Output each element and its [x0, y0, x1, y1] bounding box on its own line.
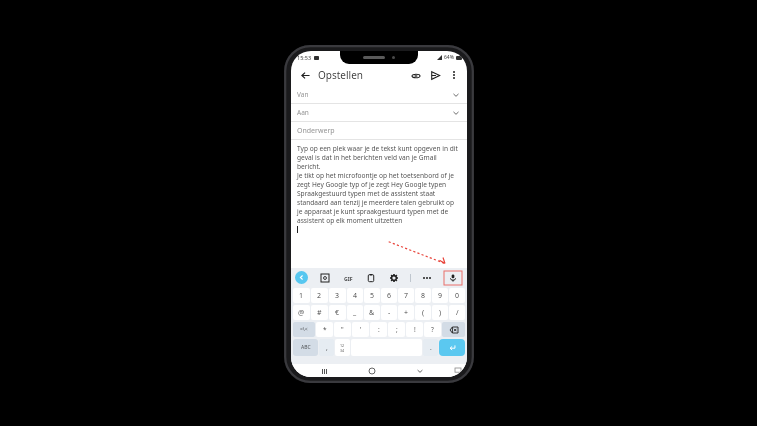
button[interactable]: Typ op een plek waar je de tekst kunt op…: [297, 144, 461, 268]
button[interactable]: Enter: [439, 339, 465, 356]
button[interactable]: 8: [415, 288, 431, 303]
staticText: ): [439, 308, 442, 318]
button[interactable]: Toetsenbord verbergen: [452, 365, 464, 377]
button[interactable]: ': [352, 322, 369, 337]
button[interactable]: Backspace: [442, 322, 465, 337]
button[interactable]: Bijlage toevoegen: [408, 68, 423, 83]
staticText: (: [422, 308, 425, 318]
button[interactable]: Van: [291, 86, 467, 103]
staticText: ,: [326, 343, 328, 352]
button[interactable]: 0: [449, 288, 465, 303]
button[interactable]: Uitvouwen: [449, 88, 463, 102]
button[interactable]: ABC: [293, 339, 318, 356]
button[interactable]: Home: [366, 365, 378, 377]
button[interactable]: @: [293, 305, 310, 320]
button[interactable]: (: [415, 305, 431, 320]
button[interactable]: GIF: [341, 271, 355, 285]
staticText: _: [353, 308, 357, 318]
button[interactable]: Stickers: [318, 271, 332, 285]
button[interactable]: :: [370, 322, 387, 337]
button[interactable]: 6: [381, 288, 397, 303]
button[interactable]: ,: [319, 339, 334, 356]
button[interactable]: Meer: [420, 271, 434, 285]
staticText: #: [317, 308, 322, 318]
button[interactable]: Terug: [414, 365, 426, 377]
staticText: Typ op een plek waar je de tekst kunt op…: [297, 144, 461, 225]
staticText: 1: [299, 291, 304, 301]
button[interactable]: &: [364, 305, 380, 320]
button[interactable]: -: [381, 305, 397, 320]
button[interactable]: 7: [398, 288, 414, 303]
button[interactable]: Aan: [291, 104, 467, 121]
button[interactable]: ": [334, 322, 351, 337]
staticText: 6: [387, 291, 392, 301]
button[interactable]: #: [311, 305, 328, 320]
button[interactable]: Meer opties: [447, 68, 461, 82]
button[interactable]: €: [329, 305, 346, 320]
staticText: =\<: [300, 326, 308, 333]
staticText: €: [335, 308, 340, 318]
staticText: Aan: [297, 108, 309, 117]
button[interactable]: Verzenden: [428, 68, 443, 83]
staticText: -: [388, 308, 391, 318]
staticText: 15:53: [297, 54, 312, 61]
button[interactable]: Instellingen: [387, 271, 401, 285]
button[interactable]: +: [398, 305, 414, 320]
staticText: 8: [421, 291, 426, 301]
button[interactable]: Google: [295, 271, 308, 284]
staticText: 34: [340, 348, 345, 353]
button[interactable]: 4: [347, 288, 363, 303]
button[interactable]: 3: [329, 288, 346, 303]
staticText: 2: [317, 291, 322, 301]
staticText: @: [298, 308, 305, 318]
button[interactable]: ;: [388, 322, 405, 337]
button[interactable]: 5: [364, 288, 380, 303]
staticText: 64%: [444, 54, 454, 61]
staticText: Onderwerp: [297, 126, 335, 136]
staticText: 12: [340, 343, 345, 348]
staticText: 7: [404, 291, 409, 301]
staticText: 9: [438, 291, 443, 301]
staticText: ": [341, 325, 344, 334]
staticText: !: [414, 325, 416, 334]
staticText: GIF: [344, 275, 353, 282]
button[interactable]: ?: [424, 322, 441, 337]
staticText: .: [430, 343, 432, 352]
button[interactable]: Onderwerp: [291, 122, 467, 139]
button[interactable]: Klembord: [364, 271, 378, 285]
button[interactable]: 1: [293, 288, 310, 303]
button[interactable]: 9: [432, 288, 448, 303]
staticText: ABC: [301, 344, 311, 351]
button[interactable]: _: [347, 305, 363, 320]
staticText: +: [404, 308, 409, 318]
staticText: :: [378, 325, 380, 334]
staticText: ': [360, 325, 362, 334]
staticText: /: [456, 308, 459, 318]
button[interactable]: 2: [311, 288, 328, 303]
staticText: 4: [353, 291, 358, 301]
button[interactable]: =\<: [293, 322, 315, 337]
button[interactable]: Recente apps: [318, 365, 330, 377]
button[interactable]: Spraakinvoer: [447, 272, 459, 284]
staticText: Opstellen: [318, 68, 363, 82]
staticText: Van: [297, 90, 309, 99]
button[interactable]: Cijfers: [335, 339, 350, 356]
button[interactable]: Terug: [297, 67, 313, 83]
staticText: 5: [370, 291, 375, 301]
button[interactable]: !: [406, 322, 423, 337]
button[interactable]: ): [432, 305, 448, 320]
staticText: *: [323, 325, 327, 334]
button[interactable]: *: [316, 322, 333, 337]
staticText: ?: [431, 325, 434, 334]
staticText: &: [369, 308, 375, 318]
button[interactable]: .: [423, 339, 438, 356]
staticText: ;: [396, 325, 398, 334]
staticText: 3: [335, 291, 340, 301]
staticText: 0: [455, 291, 460, 301]
button[interactable]: Uitvouwen: [449, 106, 463, 120]
button[interactable]: /: [449, 305, 465, 320]
